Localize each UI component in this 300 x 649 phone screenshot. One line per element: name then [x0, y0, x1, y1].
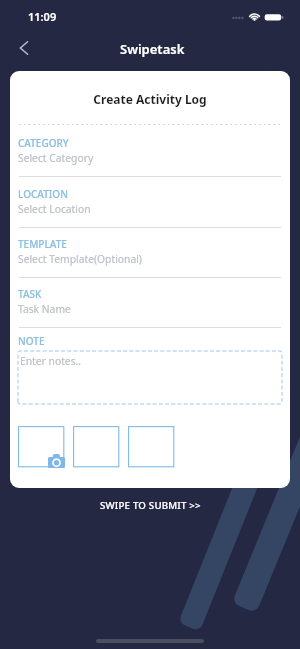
staticText: CATEGORY — [18, 136, 69, 150]
button[interactable]: LOCATION — [10, 185, 290, 235]
button[interactable]: CATEGORY — [10, 134, 290, 184]
staticText: Select Template(Optional) — [18, 252, 142, 266]
staticText: LOCATION — [18, 187, 68, 201]
button[interactable]: TEMPLATE — [10, 235, 290, 285]
staticText: Task Name — [18, 302, 71, 316]
button[interactable]: TASK — [10, 285, 290, 335]
staticText: Swipetask — [120, 40, 185, 58]
button[interactable]: Enter notes.. — [18, 351, 282, 404]
staticText: SWIPE TO SUBMIT >> — [100, 499, 201, 512]
button[interactable]: SWIPE TO SUBMIT >> — [0, 495, 300, 515]
button[interactable]: Back — [9, 33, 39, 63]
staticText: Enter notes.. — [20, 354, 82, 368]
button[interactable]: Add photo — [128, 426, 175, 468]
staticText: Select Location — [18, 202, 91, 216]
button[interactable]: Add photo — [73, 426, 120, 468]
staticText: Select Category — [18, 151, 94, 165]
staticText: Create Activity Log — [10, 91, 290, 107]
staticText: TASK — [18, 287, 42, 301]
staticText: TEMPLATE — [18, 237, 67, 251]
staticText: 11:09 — [28, 9, 57, 24]
button[interactable]: Add photo — [18, 426, 65, 468]
staticText: NOTE — [18, 334, 45, 348]
